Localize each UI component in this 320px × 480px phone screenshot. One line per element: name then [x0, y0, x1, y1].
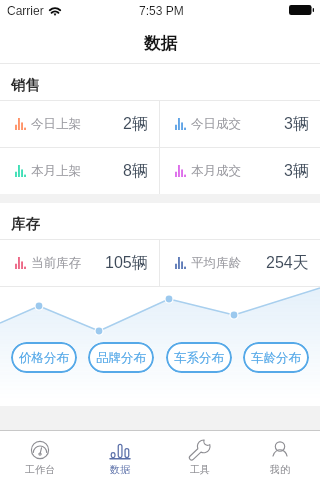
staticText: 254天 [266, 253, 309, 273]
staticText: 当前库存 [31, 255, 81, 271]
staticText: 本月成交 [191, 163, 241, 179]
button[interactable]: 工作台 [0, 431, 80, 480]
staticText: 数据 [144, 33, 177, 54]
button[interactable]: 本月上架 [0, 148, 159, 194]
button[interactable]: 品牌分布 [88, 342, 154, 373]
staticText: 8辆 [123, 161, 148, 181]
staticText: 105辆 [105, 253, 148, 273]
staticText: 品牌分布 [96, 350, 146, 366]
button[interactable]: 今日上架 [0, 101, 159, 147]
staticText: 工作台 [25, 463, 55, 476]
other: 数据 [110, 440, 130, 460]
staticText: Carrier [7, 4, 44, 17]
staticText: 7:53 PM [139, 4, 184, 17]
staticText: 3辆 [284, 114, 309, 134]
button[interactable]: 当前库存 [0, 240, 159, 286]
staticText: 平均库龄 [191, 255, 241, 271]
staticText: 今日成交 [191, 116, 241, 132]
button[interactable]: 平均库龄 [160, 240, 320, 286]
other: 我的 [270, 440, 290, 460]
staticText: 价格分布 [19, 350, 69, 366]
other: 工作台 [30, 440, 50, 460]
staticText: 我的 [270, 463, 290, 476]
staticText: 本月上架 [31, 163, 81, 179]
button[interactable]: 车龄分布 [243, 342, 309, 373]
other: 工具 [190, 440, 210, 460]
button[interactable]: 数据 [80, 431, 160, 480]
button[interactable]: 今日成交 [160, 101, 320, 147]
staticText: 车龄分布 [251, 350, 301, 366]
staticText: 库存 [11, 215, 40, 233]
button[interactable]: 本月成交 [160, 148, 320, 194]
button[interactable]: 价格分布 [11, 342, 77, 373]
button[interactable]: 工具 [160, 431, 240, 480]
staticText: 数据 [110, 463, 130, 476]
staticText: 2辆 [123, 114, 148, 134]
button[interactable]: 我的 [240, 431, 320, 480]
staticText: 工具 [190, 463, 210, 476]
button[interactable]: 车系分布 [166, 342, 232, 373]
staticText: 车系分布 [174, 350, 224, 366]
staticText: 今日上架 [31, 116, 81, 132]
staticText: 3辆 [284, 161, 309, 181]
staticText: 销售 [11, 76, 40, 94]
